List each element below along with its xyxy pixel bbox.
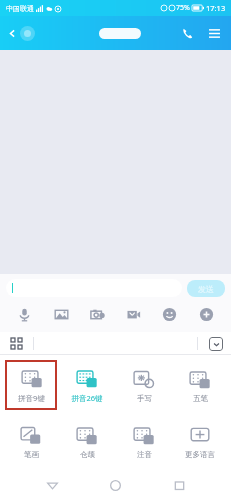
button[interactable]: 拼音9键	[5, 360, 57, 410]
button[interactable]: Recents	[168, 474, 191, 497]
button[interactable]: Back	[41, 474, 64, 497]
button[interactable]: 笔画	[5, 416, 57, 466]
staticText: 更多语言	[185, 450, 215, 459]
button[interactable]: Menu	[204, 23, 225, 44]
staticText: 17:13	[206, 3, 226, 13]
button[interactable]: 手写	[118, 360, 170, 410]
staticText: 拼音26键	[71, 393, 103, 403]
staticText: 拼音9键	[18, 393, 45, 403]
staticText: 中国联通	[6, 4, 34, 13]
button[interactable]: Back	[6, 22, 37, 45]
button[interactable]: Voice	[13, 303, 36, 326]
button[interactable]: More	[195, 303, 218, 326]
button[interactable]: 发送	[187, 280, 225, 297]
button[interactable]: Emoji	[158, 303, 181, 326]
button[interactable]: 五笔	[174, 360, 226, 410]
staticText: 仓颉	[80, 450, 95, 459]
button[interactable]: 注音	[118, 416, 170, 466]
button[interactable]: 拼音26键	[61, 360, 113, 410]
button[interactable]: Keyboard layouts	[9, 336, 24, 351]
staticText: 发送	[198, 284, 214, 294]
button[interactable]: Home	[104, 474, 127, 497]
button[interactable]: Camera	[86, 303, 109, 326]
staticText: 手写	[137, 394, 152, 403]
button[interactable]: Collapse	[209, 337, 223, 351]
button[interactable]: Video	[122, 303, 145, 326]
staticText: 笔画	[24, 450, 39, 459]
button[interactable]	[6, 279, 182, 297]
button[interactable]: Gallery	[50, 303, 73, 326]
staticText: 75%	[176, 3, 190, 13]
button[interactable]: 仓颉	[61, 416, 113, 466]
button[interactable]: 更多语言	[174, 416, 226, 466]
staticText: 五笔	[193, 394, 208, 403]
staticText: 注音	[137, 450, 152, 459]
button[interactable]: Call	[177, 23, 198, 44]
